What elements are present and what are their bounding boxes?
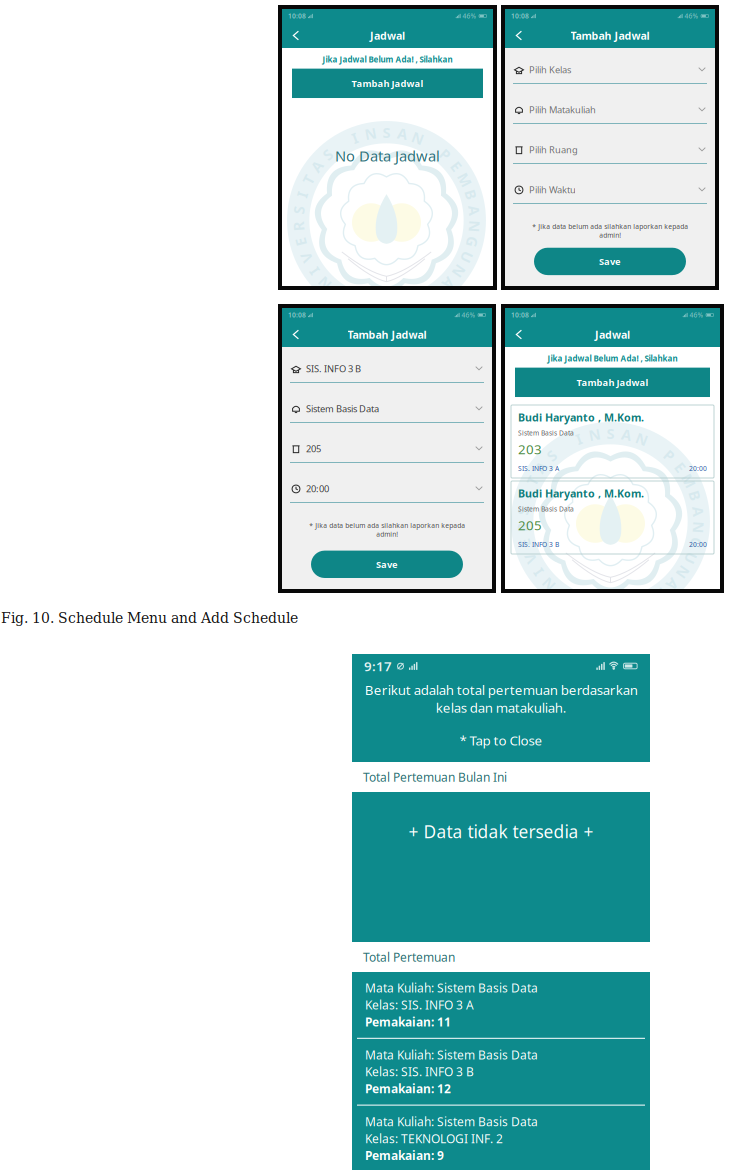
staticText: No Data Jadwal bbox=[335, 146, 440, 165]
staticText: V bbox=[525, 548, 535, 568]
button[interactable]: 205 bbox=[282, 435, 492, 475]
button[interactable]: Save bbox=[311, 551, 463, 578]
staticText: I bbox=[535, 562, 541, 582]
staticText: N bbox=[677, 562, 689, 582]
button[interactable]: Tambah Jadwal bbox=[515, 368, 710, 397]
staticText: Fig. 10. Schedule Menu and Add Schedule bbox=[1, 610, 298, 626]
staticText: S bbox=[324, 145, 332, 164]
staticText: Pilih Matakuliah bbox=[529, 103, 596, 116]
staticText: Jadwal bbox=[370, 28, 405, 43]
staticText: Jika Jadwal Belum Ada! , Silahkan bbox=[547, 353, 677, 364]
staticText: A bbox=[469, 200, 479, 220]
staticText: 10:08 bbox=[511, 12, 529, 20]
staticText: 20:00 bbox=[689, 464, 707, 473]
staticText: 46% bbox=[684, 12, 698, 20]
staticText: Save bbox=[376, 558, 398, 570]
staticText bbox=[430, 135, 434, 155]
button[interactable]: Budi Haryanto , M.Kom. bbox=[511, 405, 714, 478]
staticText: 203 bbox=[518, 440, 542, 458]
staticText: Mata Kuliah: Sistem Basis Data bbox=[365, 1114, 538, 1129]
button[interactable]: SIS. INFO 3 B bbox=[282, 355, 492, 395]
button[interactable]: 20:00 bbox=[282, 475, 492, 515]
staticText: Tambah Jadwal bbox=[351, 77, 423, 89]
staticText: SIS. INFO 3 A bbox=[518, 464, 559, 473]
staticText: Budi Haryanto , M.Kom. bbox=[518, 410, 644, 424]
button[interactable]: Sistem Basis Data bbox=[282, 395, 492, 435]
staticText: * Jika data belum ada silahkan laporkan … bbox=[309, 521, 465, 539]
button[interactable]: Back bbox=[509, 26, 529, 44]
button[interactable]: Back bbox=[286, 26, 306, 44]
staticText: Berikut adalah total pertemuan berdasark… bbox=[364, 681, 637, 716]
staticText: 10:08 bbox=[288, 12, 306, 20]
staticText: 9:17 bbox=[364, 657, 392, 675]
staticText: N bbox=[364, 124, 376, 143]
button[interactable]: Mata Kuliah: Sistem Basis Data bbox=[352, 1106, 650, 1170]
staticText: Mata Kuliah: Sistem Basis Data bbox=[365, 980, 538, 996]
staticText: I bbox=[352, 128, 358, 148]
staticText: E bbox=[676, 457, 684, 477]
staticText: A bbox=[443, 274, 453, 293]
staticText: I bbox=[299, 185, 305, 204]
button[interactable]: Back bbox=[286, 325, 306, 343]
button[interactable]: Pilih Matakuliah bbox=[505, 96, 715, 136]
button[interactable]: Mata Kuliah: Sistem Basis Data bbox=[352, 972, 650, 1038]
staticText: Sistem Basis Data bbox=[306, 402, 379, 415]
staticText: A bbox=[621, 425, 631, 444]
staticText: U bbox=[331, 284, 342, 303]
staticText: N bbox=[469, 216, 481, 236]
staticText: T bbox=[528, 471, 536, 490]
staticText: G bbox=[691, 533, 702, 553]
button[interactable]: Pilih Ruang bbox=[505, 136, 715, 176]
staticText: N bbox=[542, 575, 554, 594]
button[interactable]: Tambah Jadwal bbox=[292, 69, 483, 98]
staticText: B bbox=[466, 185, 476, 204]
staticText: Tambah Jadwal bbox=[347, 327, 426, 342]
staticText: N bbox=[412, 128, 424, 148]
staticText: G bbox=[467, 232, 478, 252]
button[interactable]: Pilih Waktu bbox=[505, 176, 715, 216]
staticText: Sistem Basis Data bbox=[518, 428, 574, 437]
button[interactable]: * Tap to Close bbox=[459, 727, 542, 753]
staticText: Pilih Kelas bbox=[529, 63, 571, 76]
staticText: Total Pertemuan Bulan Ini bbox=[363, 769, 507, 785]
button[interactable]: Budi Haryanto , M.Kom. bbox=[511, 481, 714, 554]
staticText: E bbox=[452, 156, 460, 176]
staticText: Total Pertemuan bbox=[363, 949, 455, 965]
staticText: S bbox=[382, 122, 390, 142]
staticText: Kelas: TEKNOLOGI INF. 2 bbox=[365, 1130, 503, 1146]
staticText: * Tap to Close bbox=[459, 731, 542, 749]
staticText: N bbox=[430, 284, 442, 303]
staticText: 205 bbox=[306, 442, 321, 455]
staticText: V bbox=[301, 247, 311, 267]
button[interactable]: Pilih Kelas bbox=[505, 56, 715, 96]
staticText: A bbox=[667, 575, 677, 594]
staticText: N bbox=[588, 425, 600, 444]
staticText: Jika Jadwal Belum Ada! , Silahkan bbox=[322, 54, 452, 65]
staticText: I bbox=[311, 261, 317, 281]
staticText: N bbox=[693, 517, 705, 537]
staticText: Sistem Basis Data bbox=[518, 504, 574, 513]
staticText: U bbox=[461, 247, 472, 267]
staticText: T bbox=[304, 170, 312, 189]
staticText: Kelas: SIS. INFO 3 B bbox=[365, 1064, 474, 1080]
button[interactable]: Save bbox=[534, 248, 686, 275]
staticText: Pemakaian: 12 bbox=[365, 1081, 451, 1097]
staticText: S bbox=[606, 423, 614, 443]
staticText: + Data tidak tersedia + bbox=[408, 820, 593, 843]
staticText: E bbox=[297, 232, 305, 252]
staticText: Tambah Jadwal bbox=[570, 28, 649, 43]
button[interactable]: Mata Kuliah: Sistem Basis Data bbox=[352, 1039, 650, 1105]
staticText: M bbox=[458, 170, 472, 189]
button[interactable]: Back bbox=[509, 325, 529, 343]
staticText: I bbox=[523, 486, 529, 505]
staticText: B bbox=[690, 486, 700, 505]
staticText: R bbox=[517, 517, 527, 537]
staticText: S bbox=[548, 446, 556, 465]
staticText: 20:00 bbox=[689, 540, 707, 549]
staticText: Pilih Waktu bbox=[529, 183, 576, 196]
staticText: M bbox=[682, 471, 696, 490]
staticText: N bbox=[654, 585, 666, 604]
staticText: 46% bbox=[462, 12, 476, 20]
staticText: P bbox=[665, 446, 674, 465]
